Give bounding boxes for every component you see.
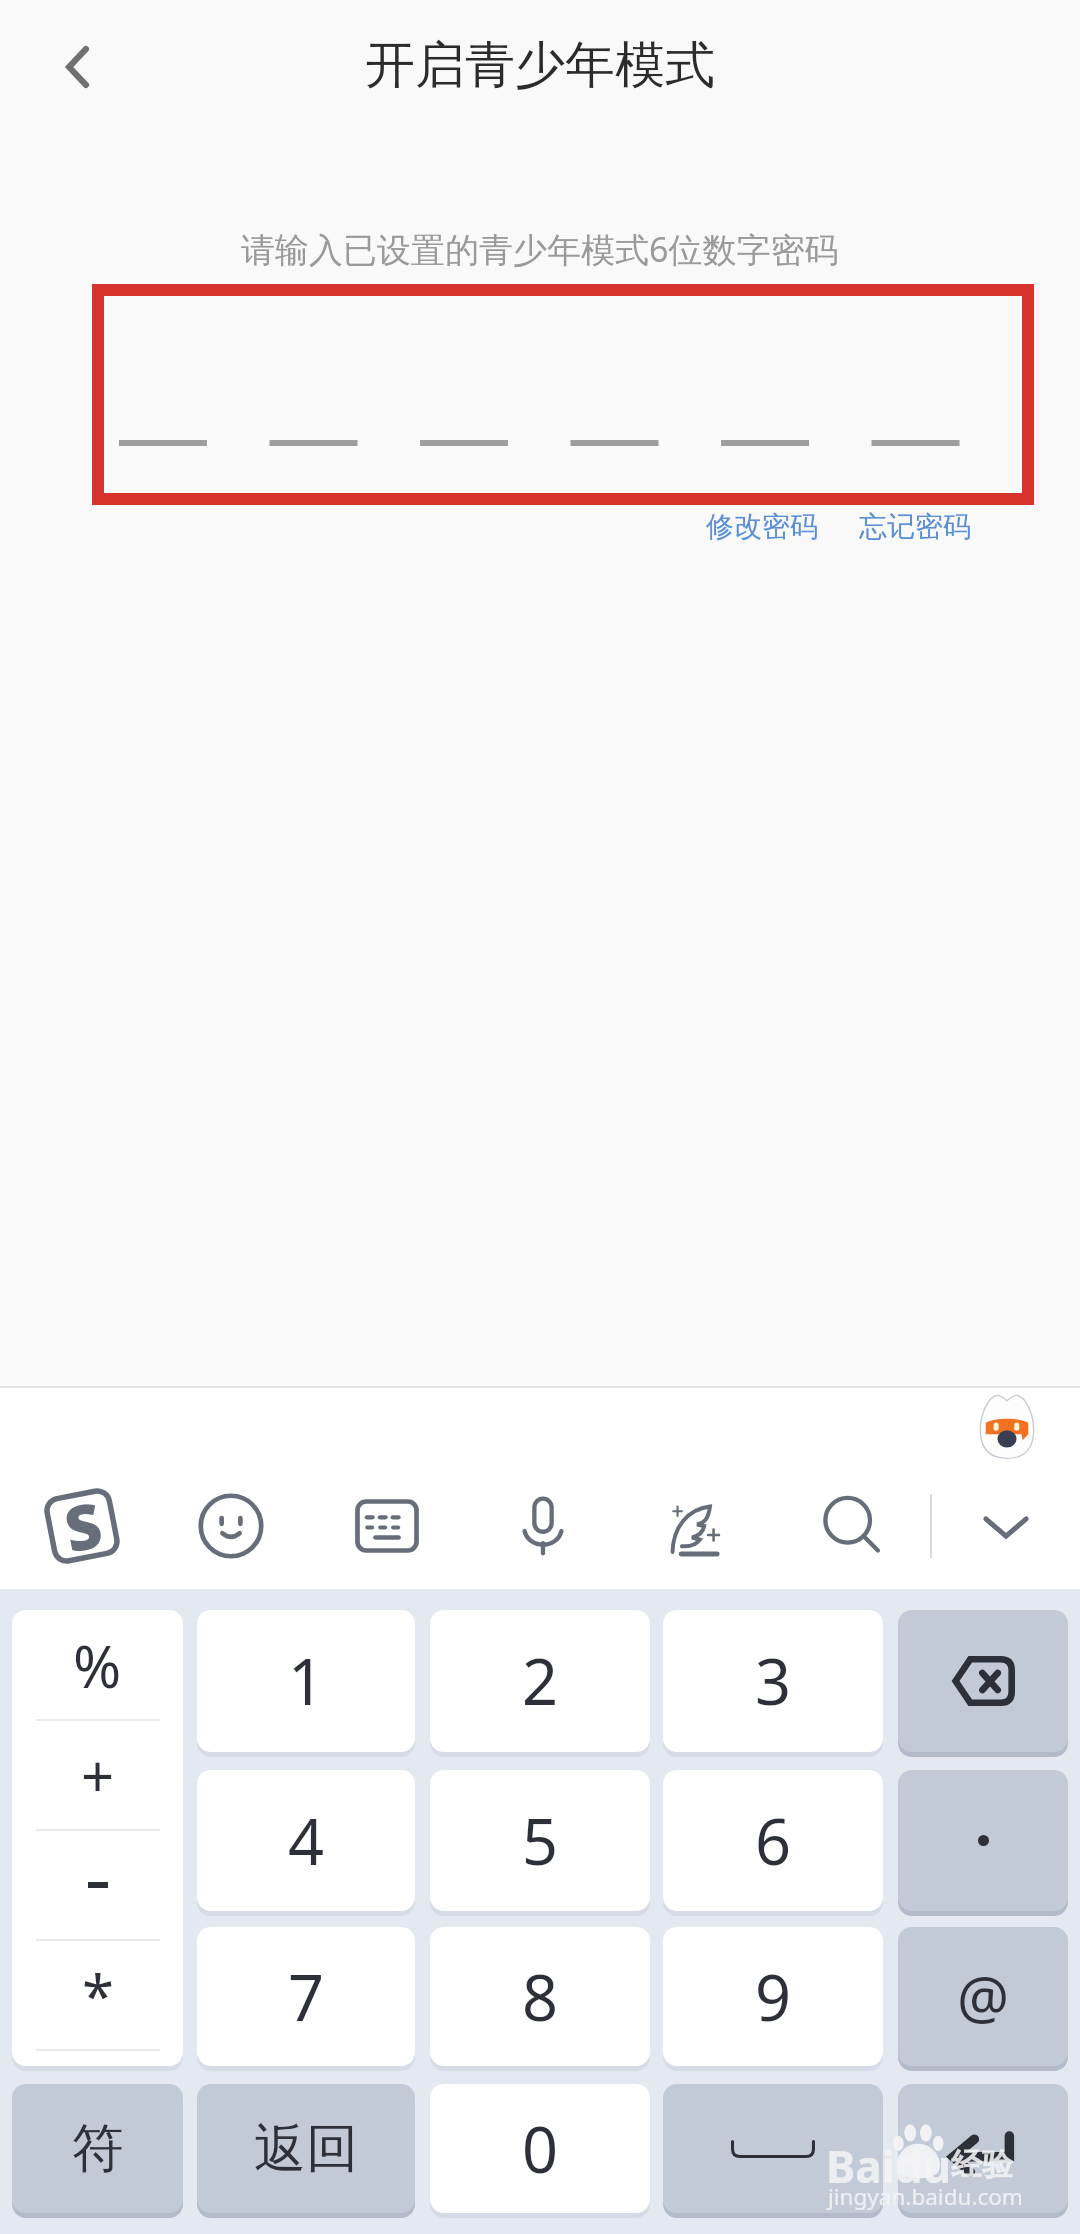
button[interactable]: @ <box>898 1927 1068 2066</box>
button[interactable]: Period <box>898 1770 1068 1911</box>
staticText: 开启青少年模式 <box>365 34 715 97</box>
staticText: * <box>82 1956 114 2035</box>
staticText: 返回 <box>254 2116 358 2182</box>
button[interactable]: 修改密码 <box>706 509 818 544</box>
button[interactable]: 4 <box>197 1770 415 1911</box>
staticText: 请输入已设置的青少年模式6位数字密码 <box>241 226 839 272</box>
button[interactable]: Assistant <box>979 1392 1035 1459</box>
button[interactable]: Handwriting <box>661 1490 733 1562</box>
button[interactable]: 3 <box>663 1610 883 1752</box>
button[interactable]: Space <box>663 2084 883 2213</box>
button[interactable]: Backspace <box>898 1610 1068 1752</box>
button[interactable]: 忘记密码 <box>859 509 971 544</box>
staticText: 1 <box>288 1638 325 1724</box>
button[interactable]: 8 <box>430 1927 650 2066</box>
button[interactable]: Symbols column <box>12 1610 183 2066</box>
staticText: S <box>57 1481 109 1570</box>
staticText: @ <box>957 1957 1010 2036</box>
button[interactable]: Sogou input <box>38 1482 126 1570</box>
staticText: 9 <box>755 1954 792 2040</box>
button[interactable]: 1 <box>197 1610 415 1752</box>
staticText: 0 <box>522 2106 559 2192</box>
staticText: 经验 <box>951 2145 1013 2184</box>
staticText: 4 <box>288 1798 325 1884</box>
button[interactable]: 6 <box>663 1770 883 1911</box>
staticText: 6 <box>755 1798 792 1884</box>
button[interactable]: 返回 <box>197 2084 415 2213</box>
staticText: 7 <box>288 1954 325 2040</box>
button[interactable]: Search <box>816 1490 888 1562</box>
button[interactable]: Keyboard layout <box>351 1490 423 1562</box>
button[interactable]: 5 <box>430 1770 650 1911</box>
button[interactable]: 9 <box>663 1927 883 2066</box>
staticText: 符 <box>72 2116 124 2182</box>
button[interactable]: 0 <box>430 2084 650 2213</box>
button[interactable]: 7 <box>197 1927 415 2066</box>
button[interactable]: Back <box>30 20 124 114</box>
button[interactable]: Enter <box>898 2084 1068 2213</box>
staticText: 修改密码 <box>706 509 818 544</box>
staticText: 3 <box>755 1638 792 1724</box>
staticText: 8 <box>522 1954 559 2040</box>
staticText: 2 <box>522 1638 559 1724</box>
staticText: + <box>81 1736 115 1815</box>
staticText: Baidu <box>826 2136 952 2196</box>
staticText: % <box>73 1626 122 1705</box>
button[interactable]: Hide keyboard <box>970 1490 1042 1562</box>
button[interactable]: 符 <box>12 2084 183 2213</box>
button[interactable]: Voice input <box>507 1490 579 1562</box>
staticText: 5 <box>522 1798 559 1884</box>
staticText: 忘记密码 <box>859 509 971 544</box>
button[interactable]: Emoji <box>195 1490 267 1562</box>
button[interactable]: 2 <box>430 1610 650 1752</box>
staticText: jingyan.baidu.com <box>828 2181 1023 2212</box>
